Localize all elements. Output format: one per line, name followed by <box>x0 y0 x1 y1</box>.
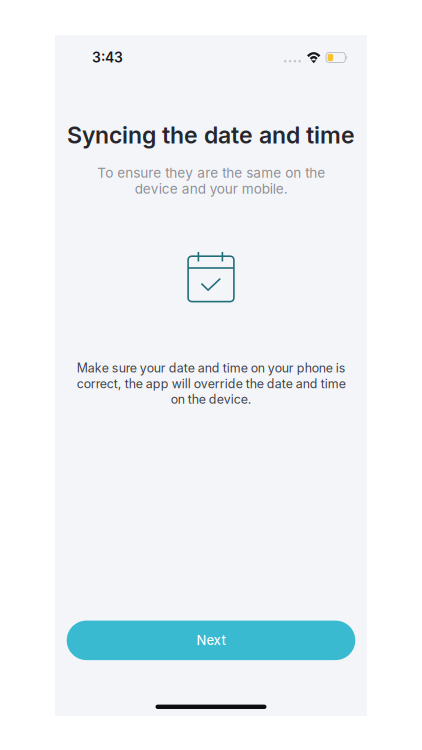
staticText: Make sure your date and time on your pho… <box>76 361 345 407</box>
staticText: 3:43 <box>92 49 123 66</box>
staticText: Next <box>196 632 225 648</box>
button[interactable]: Next <box>67 621 355 660</box>
staticText: Syncing the date and time <box>67 121 355 149</box>
staticText: To ensure they are the same on the devic… <box>97 165 325 197</box>
